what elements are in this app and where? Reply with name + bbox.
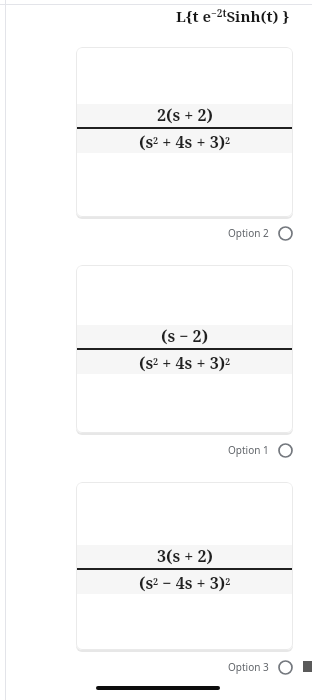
staticText: Option 2 [228, 226, 269, 240]
staticText: (s − 2) [161, 325, 209, 347]
button[interactable]: Option 3 [0, 654, 293, 680]
button[interactable]: Option 1 [0, 437, 293, 463]
staticText: (s2 + 4s + 3)2 [139, 352, 231, 374]
button[interactable]: Answer choice (s minus 2) over (s square… [76, 265, 293, 433]
staticText: (s2 − 4s + 3)2 [139, 572, 231, 594]
button[interactable]: Option 2 [0, 220, 293, 246]
button[interactable]: Answer choice 3(s + 2) over (s squared m… [76, 482, 293, 650]
staticText: Option 1 [228, 443, 269, 457]
staticText: Option 3 [228, 660, 269, 674]
staticText: (s2 + 4s + 3)2 [139, 131, 231, 153]
button[interactable]: Answer choice 2(s + 2) over (s squared +… [76, 47, 293, 217]
staticText: 2(s + 2) [157, 104, 213, 126]
staticText: 3(s + 2) [157, 545, 213, 567]
staticText: L{t e−2tSinh(t) } [176, 6, 290, 26]
